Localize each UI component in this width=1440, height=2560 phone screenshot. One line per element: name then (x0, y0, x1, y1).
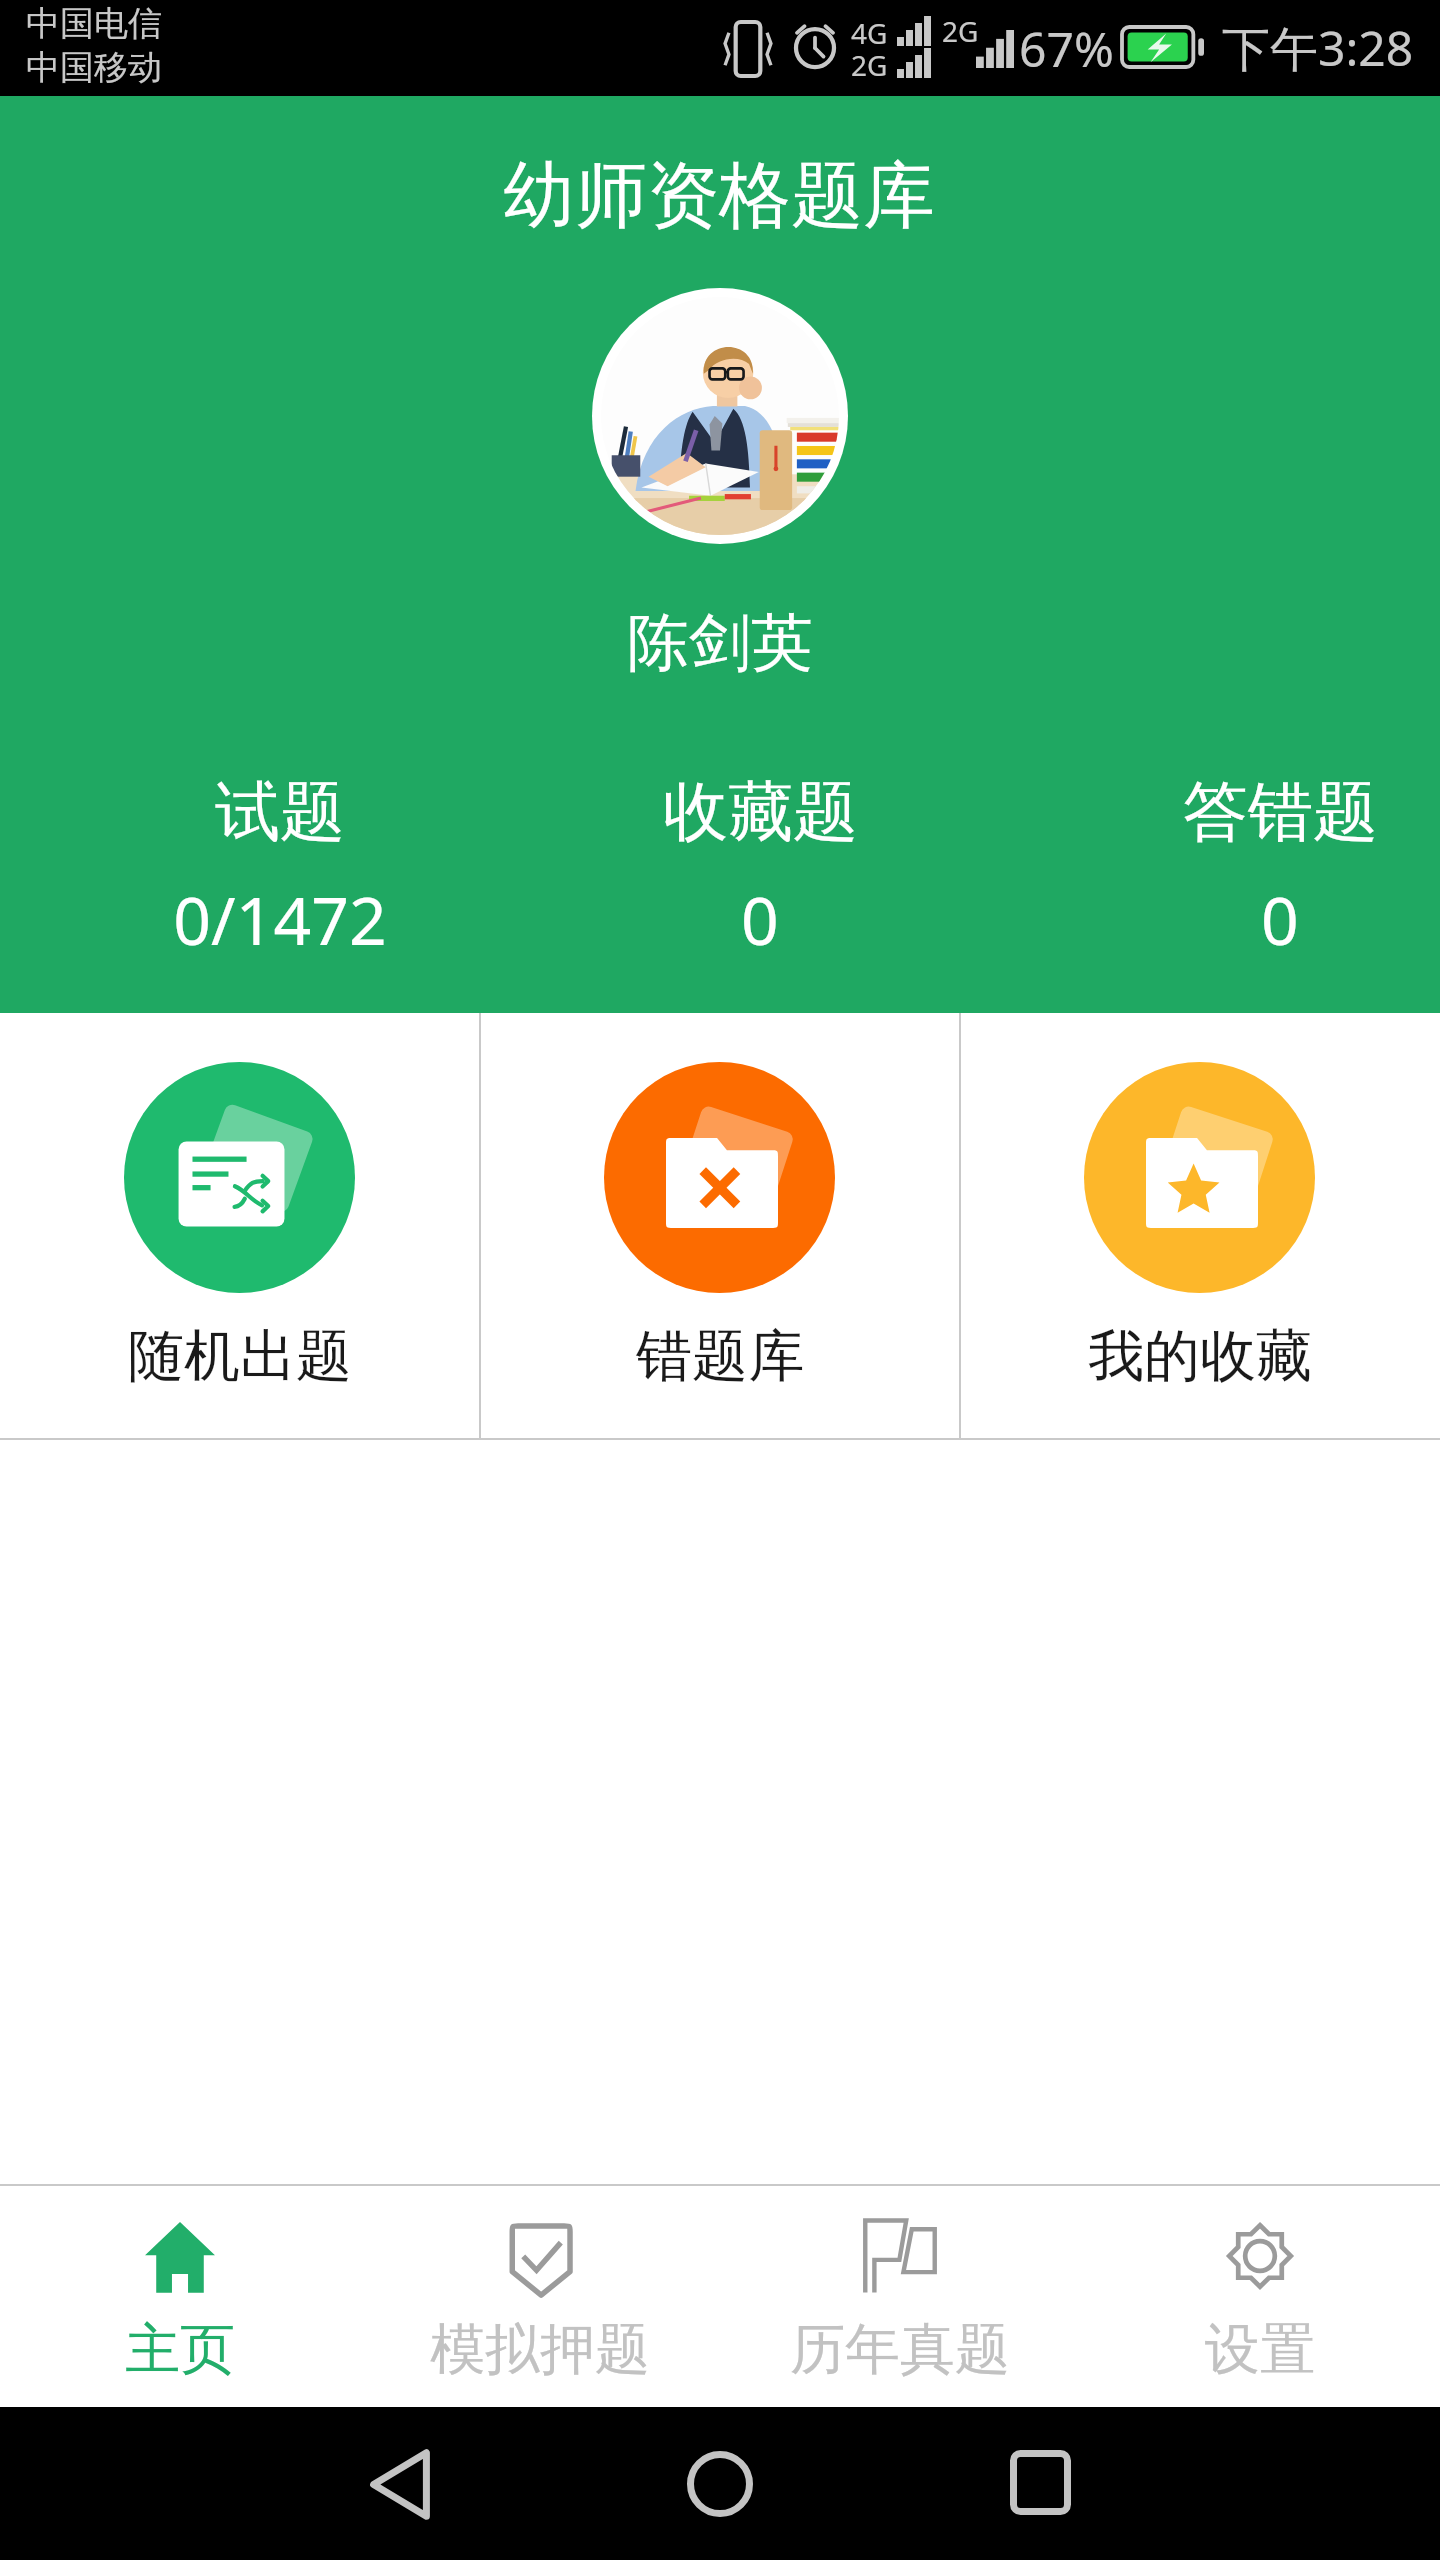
staticText: 幼师资格题库 (503, 151, 935, 242)
button[interactable]: Home (670, 2434, 770, 2534)
staticText: 随机出题 (128, 1321, 352, 1392)
staticText: 答错题 (1183, 771, 1378, 853)
button[interactable]: 历年真题 (720, 2184, 1080, 2407)
button[interactable]: 我的收藏 (960, 1013, 1440, 1438)
button[interactable]: 随机出题 (0, 1013, 480, 1438)
staticText: 设置 (1205, 2315, 1315, 2384)
button[interactable]: 设置 (1080, 2184, 1440, 2407)
staticText: 67% (1019, 16, 1114, 81)
staticText: 历年真题 (790, 2315, 1010, 2384)
staticText: 0 (1261, 874, 1299, 964)
button[interactable]: 主页 (0, 2184, 360, 2407)
staticText: 陈剑英 (627, 604, 813, 682)
staticText: 中国移动 (26, 46, 162, 89)
staticText: 2G (942, 12, 979, 50)
button[interactable]: Recent apps (990, 2432, 1090, 2532)
button[interactable]: 模拟押题 (360, 2184, 720, 2407)
staticText: 我的收藏 (1088, 1321, 1312, 1392)
button[interactable]: 错题库 (480, 1013, 960, 1438)
staticText: 中国电信 (26, 2, 162, 45)
staticText: 2G (851, 46, 888, 84)
staticText: 收藏题 (663, 771, 858, 853)
staticText: 模拟押题 (430, 2315, 650, 2384)
staticText: 下午3:28 (1222, 15, 1414, 81)
staticText: 主页 (125, 2315, 235, 2384)
staticText: 4G (851, 14, 888, 52)
staticText: 0/1472 (173, 874, 387, 964)
staticText: 错题库 (636, 1321, 804, 1392)
staticText: 试题 (215, 771, 345, 853)
button[interactable]: Profile photo (592, 288, 848, 544)
button[interactable]: Back (350, 2434, 450, 2534)
staticText: 0 (741, 874, 779, 964)
